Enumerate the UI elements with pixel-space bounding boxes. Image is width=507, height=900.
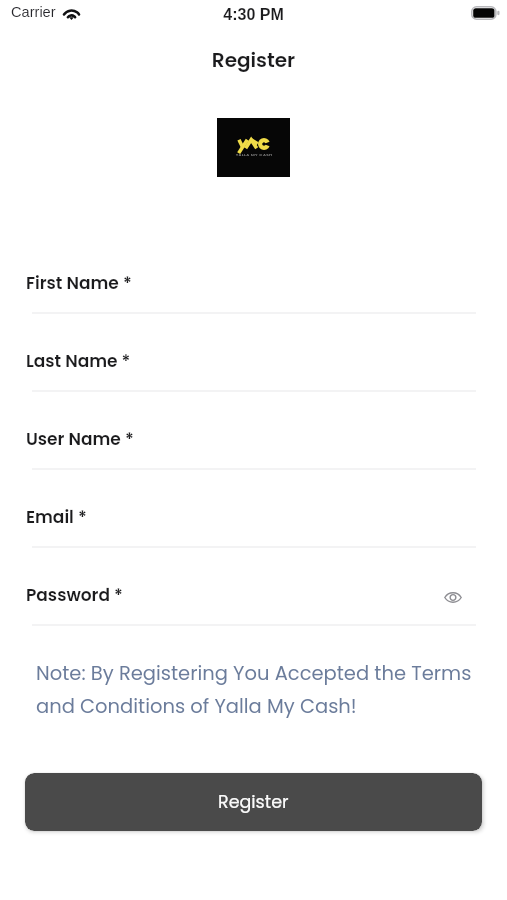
staticText: Register	[0, 46, 507, 74]
button[interactable]: User Name *	[0, 417, 507, 470]
staticText: Email *	[26, 505, 87, 529]
staticText: YALLA MY CASH	[233, 152, 275, 158]
button[interactable]: First Name *	[0, 261, 507, 314]
button[interactable]: Password *	[0, 573, 507, 626]
staticText: Note: By Registering You Accepted the Te…	[36, 660, 482, 720]
staticText: Password *	[26, 583, 123, 607]
staticText: User Name *	[26, 427, 134, 451]
staticText: First Name *	[26, 271, 132, 295]
button[interactable]: Register	[25, 773, 482, 831]
staticText: 4:30 PM	[0, 6, 507, 24]
staticText: Last Name *	[26, 349, 131, 373]
button[interactable]: Last Name *	[0, 339, 507, 392]
staticText: Carrier	[11, 4, 56, 20]
button[interactable]: Email *	[0, 495, 507, 548]
staticText: Register	[218, 790, 289, 815]
button[interactable]: Show password	[439, 583, 467, 611]
